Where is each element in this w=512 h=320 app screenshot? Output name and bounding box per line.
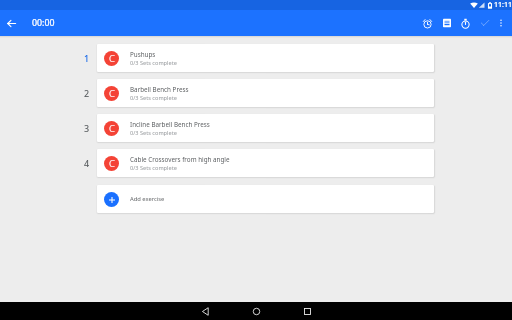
- button[interactable]: Finish workout: [475, 10, 494, 36]
- button[interactable]: Set rest timer: [418, 10, 437, 36]
- staticText: 11:11: [494, 0, 512, 10]
- staticText: Pushups: [130, 50, 156, 59]
- staticText: Add exercise: [130, 195, 165, 203]
- button[interactable]: C: [97, 44, 434, 72]
- button[interactable]: Back: [196, 302, 214, 320]
- button[interactable]: Navigate up: [0, 12, 23, 35]
- staticText: 1: [84, 52, 90, 64]
- staticText: 3: [84, 122, 90, 134]
- staticText: Barbell Bench Press: [130, 85, 189, 94]
- button[interactable]: Stopwatch: [456, 10, 475, 36]
- button[interactable]: Workout notes: [437, 10, 456, 36]
- staticText: Incline Barbell Bench Press: [130, 120, 210, 129]
- staticText: 0/3 Sets complete: [130, 129, 177, 137]
- button[interactable]: Add exercise: [97, 185, 434, 213]
- button[interactable]: Home: [247, 302, 265, 320]
- staticText: 0/3 Sets complete: [130, 59, 177, 67]
- staticText: 0/3 Sets complete: [130, 94, 177, 102]
- staticText: Cable Crossovers from high angle: [130, 155, 230, 164]
- button[interactable]: More options: [491, 10, 510, 36]
- staticText: C: [109, 87, 115, 100]
- button[interactable]: C: [97, 149, 434, 177]
- button[interactable]: Recent apps: [298, 302, 316, 320]
- button[interactable]: C: [97, 79, 434, 107]
- staticText: C: [109, 122, 115, 135]
- staticText: C: [109, 157, 115, 170]
- staticText: 00:00: [32, 17, 55, 29]
- staticText: 2: [84, 87, 90, 99]
- staticText: 0/3 Sets complete: [130, 164, 177, 172]
- staticText: 4: [84, 157, 90, 169]
- staticText: C: [109, 52, 115, 65]
- button[interactable]: C: [97, 114, 434, 142]
